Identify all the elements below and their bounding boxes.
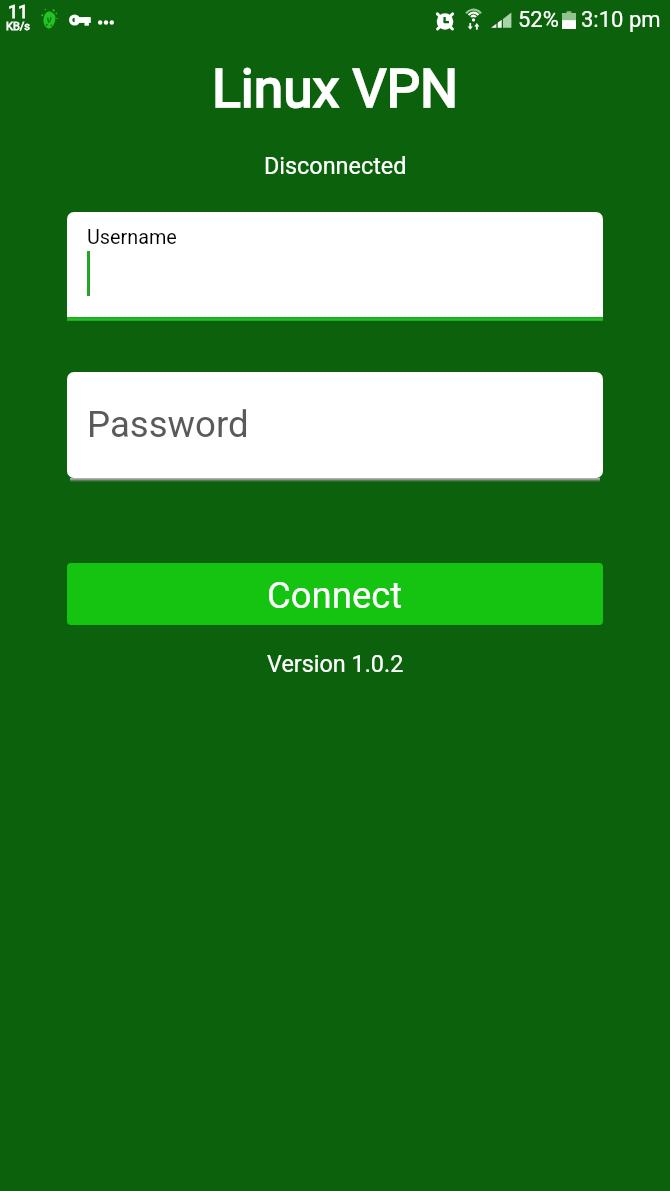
other: Alarm set (435, 10, 455, 31)
button[interactable]: Connect (67, 563, 603, 625)
staticText: Disconnected (264, 152, 407, 179)
button[interactable]: Password (67, 372, 603, 482)
staticText: Linux VPN (212, 57, 459, 120)
staticText: 11 (8, 1, 29, 22)
other: More notifications (98, 17, 114, 23)
staticText: Username (87, 226, 177, 249)
other: Battery 52 percent (562, 9, 576, 31)
staticText: Connect (267, 574, 403, 617)
button[interactable]: Username (67, 212, 603, 321)
other: Wi-Fi connected (465, 9, 482, 31)
other: VPN key active (69, 11, 92, 29)
staticText: 3:10 pm (581, 7, 661, 33)
other: Mobile signal (490, 11, 512, 30)
staticText: KB/s (6, 20, 30, 33)
staticText: 52% (518, 7, 559, 33)
staticText: Version 1.0.2 (267, 650, 404, 677)
staticText: Password (87, 403, 249, 446)
other: VPN status (40, 8, 59, 32)
